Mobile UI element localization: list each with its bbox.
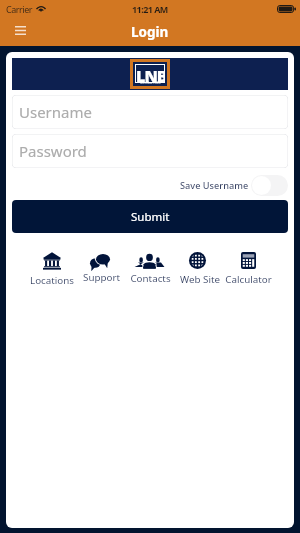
staticText: Member FDIC [140,81,161,85]
button[interactable]: Submit [12,200,288,233]
staticText: LNB [136,65,164,82]
button[interactable]: Contacts [126,252,175,285]
staticText: Contacts [130,272,171,285]
staticText: Calculator [225,273,272,286]
staticText: Locations [30,274,74,287]
button[interactable]: Menu [8,19,33,41]
staticText: Web Site [180,273,220,286]
staticText: 11:21 AM [132,3,168,15]
staticText: Support [83,271,120,284]
button[interactable]: Calculator [224,252,273,286]
staticText: Username [19,102,92,122]
staticText: Submit [131,209,170,225]
staticText: Save Username [180,179,249,192]
button[interactable]: Save Username toggle [251,175,288,196]
button[interactable]: Web Site [175,252,224,286]
button[interactable]: Support [77,252,126,284]
staticText: Password [19,141,87,161]
staticText: Carrier [6,3,33,15]
button[interactable]: Username [12,95,288,129]
staticText: Login [131,23,169,41]
button[interactable]: Password [12,134,288,168]
button[interactable]: Locations [27,252,77,287]
